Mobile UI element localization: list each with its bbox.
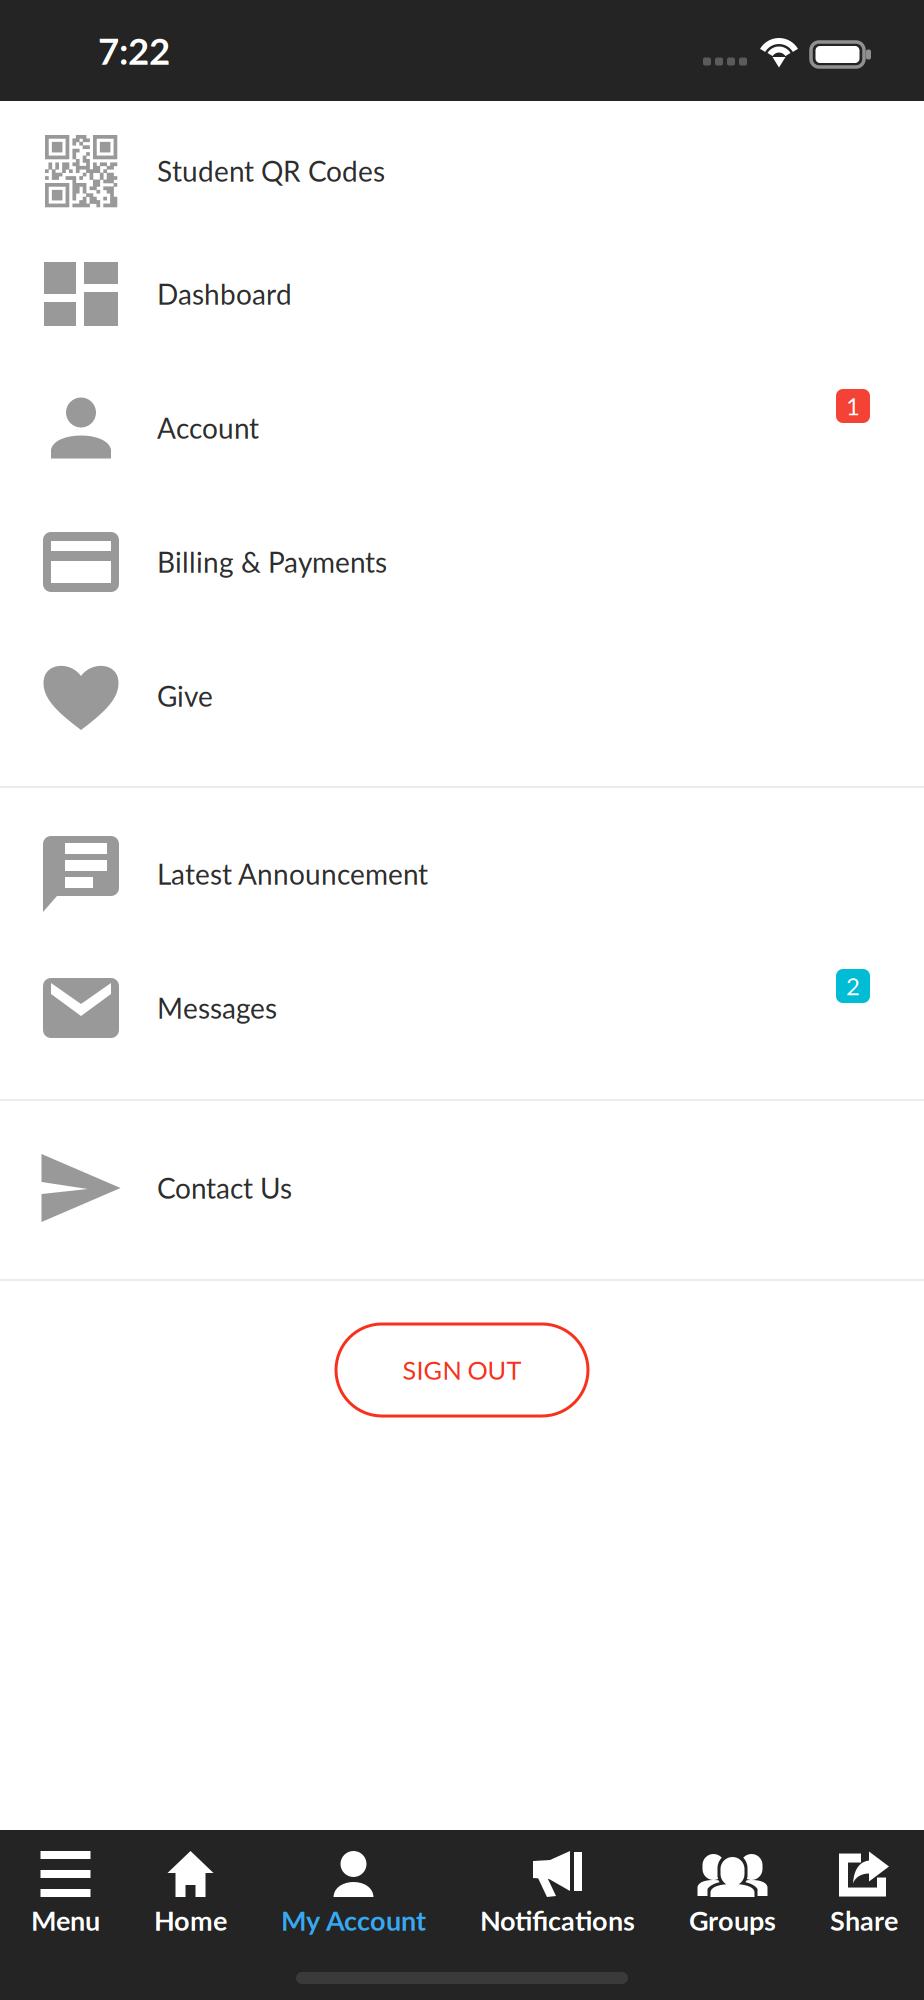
button[interactable]: SIGN OUT <box>336 1324 588 1416</box>
staticText: Give <box>157 679 213 713</box>
staticText: 7:22 <box>98 28 170 72</box>
button[interactable]: Messages <box>0 941 924 1075</box>
button[interactable]: My Account <box>281 1851 426 1936</box>
staticText: 2 <box>846 972 860 1000</box>
staticText: Home <box>154 1904 227 1936</box>
button[interactable]: Home <box>154 1851 227 1936</box>
button[interactable]: Account <box>0 361 924 495</box>
staticText: Menu <box>31 1904 100 1936</box>
button[interactable]: Notifications <box>480 1851 635 1936</box>
staticText: Billing & Payments <box>157 545 387 579</box>
button[interactable]: Contact Us <box>0 1121 924 1255</box>
button[interactable]: Share <box>830 1851 898 1936</box>
staticText: Groups <box>689 1904 776 1936</box>
staticText: Dashboard <box>157 277 292 311</box>
button[interactable]: Latest Announcement <box>0 807 924 941</box>
staticText: My Account <box>281 1904 426 1936</box>
button[interactable]: Give <box>0 629 924 763</box>
button[interactable]: Dashboard <box>0 227 924 361</box>
staticText: Student QR Codes <box>157 154 385 188</box>
staticText: Latest Announcement <box>157 857 428 891</box>
staticText: SIGN OUT <box>402 1355 521 1385</box>
button[interactable]: Menu <box>31 1851 100 1936</box>
staticText: Share <box>830 1904 898 1936</box>
staticText: Contact Us <box>157 1171 292 1205</box>
staticText: 1 <box>846 392 860 420</box>
button[interactable]: Student QR Codes <box>0 101 924 227</box>
staticText: Messages <box>157 991 277 1025</box>
staticText: Account <box>157 411 259 445</box>
button[interactable]: Groups <box>689 1851 776 1936</box>
button[interactable]: Billing & Payments <box>0 495 924 629</box>
staticText: Notifications <box>480 1904 635 1936</box>
